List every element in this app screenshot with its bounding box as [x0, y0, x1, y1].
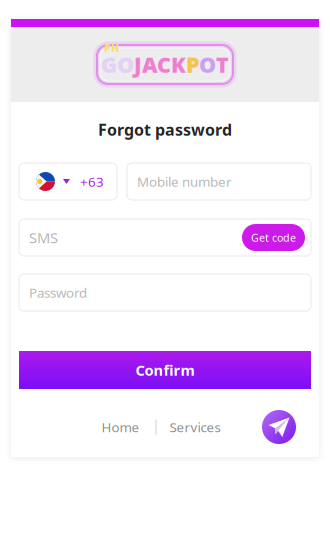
staticText: GO — [101, 50, 134, 79]
staticText: GOJACKPOT — [101, 50, 228, 79]
staticText: JACK — [134, 50, 186, 79]
button[interactable]: Confirm — [19, 351, 311, 389]
button[interactable]: Get code — [242, 224, 305, 251]
staticText: Forgot password — [98, 119, 232, 140]
button[interactable]: Services — [156, 410, 230, 444]
button[interactable]: Password — [19, 274, 311, 311]
button[interactable]: +63 — [19, 163, 117, 200]
staticText: T — [216, 50, 229, 79]
staticText: SMS — [29, 228, 58, 247]
button[interactable]: Mobile number — [127, 163, 311, 200]
staticText: Get code — [251, 230, 296, 245]
staticText: Home — [101, 418, 139, 436]
button[interactable]: Home — [91, 410, 155, 444]
staticText: PH — [104, 40, 119, 55]
staticText: Confirm — [135, 360, 194, 380]
staticText: Services — [169, 418, 220, 436]
staticText: Password — [29, 284, 87, 301]
staticText: Mobile number — [137, 173, 232, 190]
button[interactable]: Contact support — [262, 410, 296, 444]
staticText: +63 — [80, 173, 104, 190]
staticText: O — [199, 50, 216, 79]
staticText: P — [186, 50, 199, 79]
